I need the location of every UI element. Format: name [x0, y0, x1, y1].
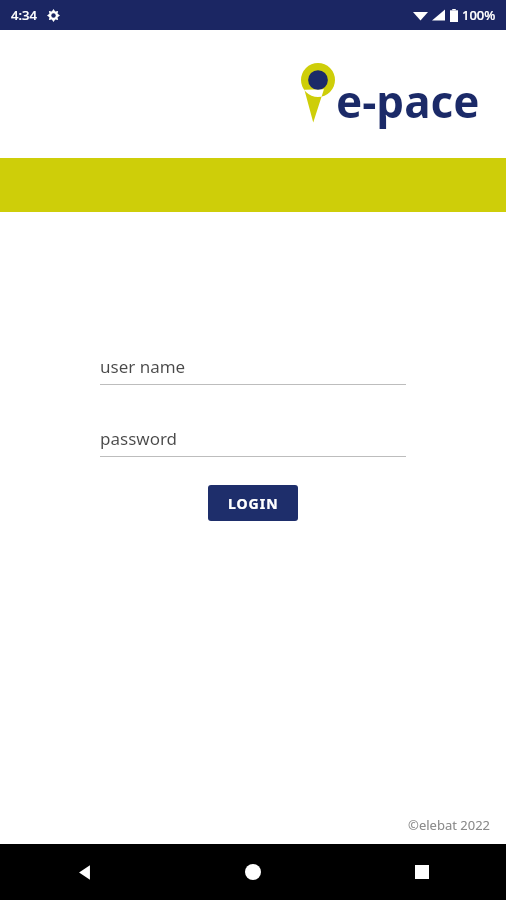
- staticText: password: [100, 427, 178, 450]
- staticText: 4:34: [11, 6, 37, 24]
- button[interactable]: Recents: [337, 844, 506, 900]
- button[interactable]: Home: [168, 844, 337, 900]
- staticText: 100%: [462, 6, 496, 24]
- other: e-pace logo: [301, 63, 335, 125]
- button[interactable]: LOGIN: [208, 485, 298, 521]
- staticText: e-pace: [336, 71, 480, 131]
- staticText: user name: [100, 355, 186, 378]
- button[interactable]: Back: [0, 844, 168, 900]
- button[interactable]: password: [100, 427, 406, 457]
- staticText: LOGIN: [228, 494, 279, 513]
- staticText: ©elebat 2022: [0, 816, 490, 834]
- button[interactable]: user name: [100, 355, 406, 385]
